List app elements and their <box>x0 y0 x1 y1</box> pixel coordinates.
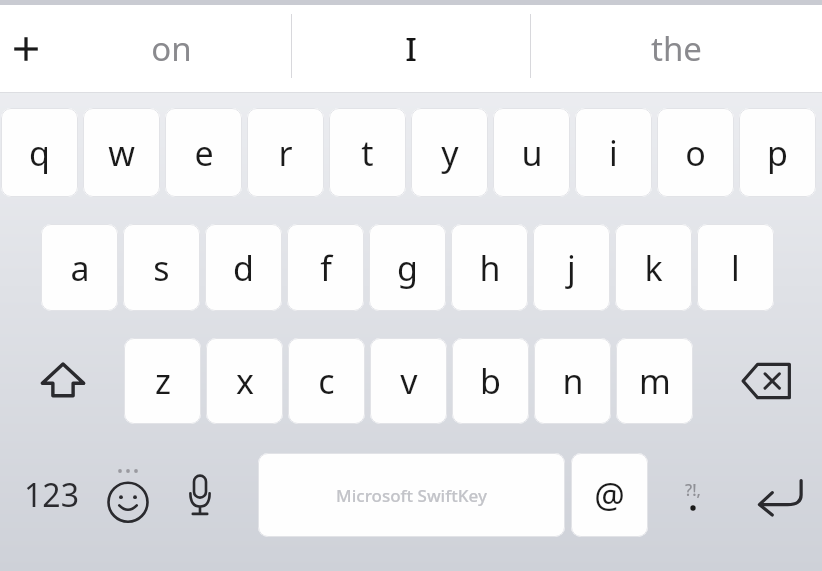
staticText: z <box>155 358 171 404</box>
staticText: @ <box>594 472 625 518</box>
button[interactable]: a <box>41 224 118 311</box>
button[interactable]: q <box>1 108 78 197</box>
button[interactable]: z <box>124 338 201 424</box>
staticText: c <box>318 358 335 404</box>
button[interactable]: Add <box>0 5 52 92</box>
button[interactable]: d <box>205 224 282 311</box>
staticText: u <box>521 130 543 176</box>
staticText: d <box>233 245 254 291</box>
button[interactable]: h <box>451 224 528 311</box>
button[interactable]: p <box>739 108 816 197</box>
button[interactable]: s <box>123 224 200 311</box>
button[interactable]: Backspace <box>712 338 822 424</box>
button[interactable]: w <box>83 108 160 197</box>
button[interactable]: n <box>534 338 611 424</box>
staticText: l <box>731 245 740 291</box>
staticText: on <box>151 26 192 71</box>
button[interactable]: @ <box>571 453 648 537</box>
staticText: x <box>236 358 254 404</box>
staticText: i <box>609 130 618 176</box>
staticText: k <box>644 245 663 291</box>
button[interactable]: Voice input <box>166 453 234 537</box>
staticText: b <box>480 358 501 404</box>
button[interactable]: j <box>533 224 610 311</box>
button[interactable]: g <box>369 224 446 311</box>
staticText: n <box>562 358 584 404</box>
staticText: f <box>320 245 332 291</box>
button[interactable]: m <box>616 338 693 424</box>
button[interactable]: y <box>411 108 488 197</box>
staticText: p <box>767 130 788 176</box>
button[interactable]: k <box>615 224 692 311</box>
staticText: h <box>479 245 501 291</box>
button[interactable]: Emoji <box>94 453 162 537</box>
staticText: a <box>70 245 90 291</box>
staticText: I <box>405 26 417 71</box>
button[interactable]: i <box>575 108 652 197</box>
button[interactable]: c <box>288 338 365 424</box>
staticText: m <box>639 358 671 404</box>
staticText: j <box>567 245 576 291</box>
button[interactable]: the <box>531 5 822 92</box>
staticText: v <box>400 358 418 404</box>
staticText: o <box>685 130 706 176</box>
staticText: 123 <box>24 473 79 517</box>
staticText: e <box>194 130 214 176</box>
button[interactable]: t <box>329 108 406 197</box>
button[interactable]: Microsoft SwiftKey <box>258 453 565 537</box>
button[interactable]: b <box>452 338 529 424</box>
staticText: Microsoft SwiftKey <box>336 484 487 507</box>
staticText: y <box>441 130 459 176</box>
button[interactable]: Period and punctuation <box>657 453 729 537</box>
button[interactable]: o <box>657 108 734 197</box>
button[interactable]: v <box>370 338 447 424</box>
button[interactable]: x <box>206 338 283 424</box>
button[interactable]: Shift <box>8 338 118 424</box>
staticText: s <box>153 245 170 291</box>
button[interactable]: l <box>697 224 774 311</box>
button[interactable]: f <box>287 224 364 311</box>
staticText: q <box>29 130 50 176</box>
button[interactable]: u <box>493 108 570 197</box>
button[interactable]: 123 <box>8 453 94 537</box>
staticText: g <box>397 245 418 291</box>
staticText: w <box>108 130 135 176</box>
button[interactable]: e <box>165 108 242 197</box>
button[interactable]: I <box>292 5 530 92</box>
button[interactable]: on <box>52 5 291 92</box>
staticText: ?!, <box>685 479 701 501</box>
button[interactable]: Enter <box>738 453 822 537</box>
staticText: r <box>278 130 293 176</box>
button[interactable]: r <box>247 108 324 197</box>
staticText: t <box>361 130 374 176</box>
staticText: the <box>651 26 702 71</box>
